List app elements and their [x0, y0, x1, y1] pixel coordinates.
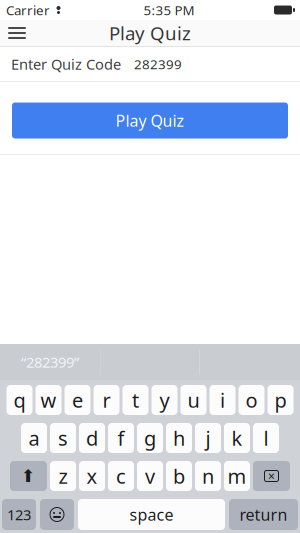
- button[interactable]: l: [253, 423, 279, 453]
- staticText: t: [132, 387, 139, 413]
- button[interactable]: o: [238, 385, 264, 415]
- button[interactable]: return: [229, 499, 298, 530]
- button[interactable]: m: [224, 461, 250, 491]
- button[interactable]: t: [122, 385, 148, 415]
- staticText: ⬆: [21, 466, 36, 486]
- button[interactable]: i: [209, 385, 235, 415]
- button[interactable]: w: [35, 385, 61, 415]
- staticText: space: [129, 504, 173, 525]
- staticText: u: [187, 387, 199, 413]
- staticText: c: [116, 463, 126, 489]
- staticText: Carrier: [6, 1, 50, 19]
- staticText: 5:35 PM: [143, 1, 194, 19]
- button[interactable]: h: [166, 423, 192, 453]
- button[interactable]: j: [195, 423, 221, 453]
- button[interactable]: Emoji: [40, 499, 74, 530]
- staticText: l: [263, 425, 268, 451]
- staticText: “282399”: [21, 352, 79, 372]
- staticText: a: [28, 425, 39, 451]
- staticText: o: [245, 387, 257, 413]
- staticText: 282399: [134, 55, 182, 73]
- staticText: g: [144, 425, 156, 451]
- staticText: z: [58, 463, 67, 489]
- button[interactable]: g: [137, 423, 163, 453]
- button[interactable]: k: [224, 423, 250, 453]
- staticText: return: [239, 504, 287, 525]
- button[interactable]: space: [78, 499, 225, 530]
- staticText: q: [13, 387, 25, 413]
- staticText: w: [40, 387, 56, 413]
- button[interactable]: u: [180, 385, 206, 415]
- staticText: p: [274, 387, 286, 413]
- button[interactable]: s: [50, 423, 76, 453]
- button[interactable]: 123: [2, 499, 36, 530]
- staticText: e: [72, 387, 83, 413]
- button[interactable]: n: [195, 461, 221, 491]
- staticText: d: [86, 425, 98, 451]
- staticText: i: [220, 387, 225, 413]
- button[interactable]: Menu: [0, 20, 34, 46]
- button[interactable]: Play Quiz: [12, 102, 288, 138]
- button[interactable]: Shift: [10, 461, 47, 491]
- staticText: h: [173, 425, 185, 451]
- button[interactable]: p: [267, 385, 293, 415]
- button[interactable]: c: [108, 461, 134, 491]
- button[interactable]: x: [79, 461, 105, 491]
- staticText: Play Quiz: [115, 110, 184, 131]
- button[interactable]: e: [64, 385, 90, 415]
- staticText: 123: [7, 505, 31, 524]
- staticText: x: [86, 463, 97, 489]
- button[interactable]: v: [137, 461, 163, 491]
- button[interactable]: “282399”: [0, 344, 100, 380]
- button[interactable]: d: [79, 423, 105, 453]
- staticText: f: [117, 425, 124, 451]
- staticText: m: [227, 463, 246, 489]
- staticText: r: [102, 387, 110, 413]
- staticText: b: [173, 463, 185, 489]
- staticText: j: [205, 425, 210, 451]
- button[interactable]: a: [21, 423, 47, 453]
- staticText: Play Quiz: [109, 21, 191, 45]
- button[interactable]: b: [166, 461, 192, 491]
- button[interactable]: y: [151, 385, 177, 415]
- button[interactable]: q: [6, 385, 32, 415]
- staticText: k: [231, 425, 242, 451]
- button[interactable]: z: [50, 461, 76, 491]
- staticText: s: [58, 425, 68, 451]
- button[interactable]: r: [93, 385, 119, 415]
- staticText: Enter Quiz Code: [11, 54, 121, 74]
- staticText: ×: [268, 468, 275, 484]
- button[interactable]: f: [108, 423, 134, 453]
- staticText: v: [145, 463, 155, 489]
- staticText: n: [202, 463, 214, 489]
- button[interactable]: Delete: [253, 461, 290, 491]
- staticText: y: [159, 387, 169, 413]
